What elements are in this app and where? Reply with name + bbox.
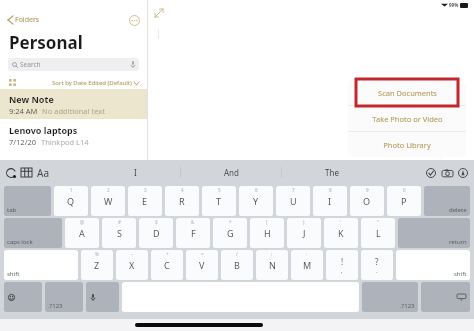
- staticText: 6: [255, 187, 258, 193]
- button[interactable]: delete: [424, 186, 470, 216]
- button[interactable]: shift: [396, 250, 470, 280]
- staticText: tab: [7, 206, 17, 214]
- button[interactable]: $: [139, 218, 173, 248]
- button[interactable]: I: [90, 160, 180, 185]
- button[interactable]: The: [282, 160, 382, 185]
- button[interactable]: Sort by Date Edited (Default): [52, 79, 139, 87]
- button[interactable]: +: [151, 250, 183, 280]
- staticText: Aa: [37, 166, 49, 180]
- staticText: Scan Documents: [378, 88, 437, 98]
- staticText: M: [303, 259, 312, 271]
- staticText: New Note: [9, 93, 54, 105]
- button[interactable]: 5: [202, 186, 236, 216]
- button[interactable]: @: [65, 218, 99, 248]
- staticText: D: [153, 227, 160, 239]
- button[interactable]: ;: [256, 250, 288, 280]
- button[interactable]: Emoji: [4, 282, 42, 312]
- button[interactable]: ": [361, 218, 395, 248]
- staticText: Photo Library: [383, 140, 431, 150]
- button[interactable]: Gallery view: [8, 78, 17, 87]
- staticText: ': [340, 219, 342, 225]
- staticText: ): [303, 219, 305, 225]
- button[interactable]: 0: [387, 186, 421, 216]
- button[interactable]: Hide keyboard: [421, 282, 470, 312]
- staticText: Q: [67, 195, 75, 207]
- button[interactable]: .?123: [45, 282, 83, 312]
- button[interactable]: Insert table: [20, 166, 33, 179]
- staticText: caps lock: [7, 238, 33, 246]
- staticText: S: [117, 227, 122, 239]
- staticText: !: [341, 256, 344, 267]
- button[interactable]: shift: [4, 250, 78, 280]
- button[interactable]: Done: [424, 166, 438, 180]
- staticText: P: [401, 195, 407, 207]
- button[interactable]: #: [102, 218, 136, 248]
- button[interactable]: ': [324, 218, 358, 248]
- button[interactable]: New Note: [0, 89, 147, 119]
- button[interactable]: 6: [239, 186, 273, 216]
- button[interactable]: 9: [350, 186, 384, 216]
- button[interactable]: 3: [128, 186, 162, 216]
- staticText: -: [131, 251, 133, 257]
- button[interactable]: 2: [91, 186, 125, 216]
- button[interactable]: tab: [4, 186, 51, 216]
- button[interactable]: Lenovo laptops: [0, 119, 147, 149]
- staticText: F: [191, 227, 196, 239]
- staticText: Sort by Date Edited (Default): [52, 79, 132, 87]
- button[interactable]: 1: [54, 186, 88, 216]
- staticText: E: [142, 195, 148, 207]
- staticText: 0: [403, 187, 406, 193]
- button[interactable]: *: [213, 218, 247, 248]
- staticText: 9: [366, 187, 369, 193]
- button[interactable]: return: [398, 218, 470, 248]
- button[interactable]: ): [287, 218, 321, 248]
- button[interactable]: caps lock: [4, 218, 62, 248]
- button[interactable]: More options: [128, 14, 141, 27]
- button[interactable]: Aa: [37, 166, 49, 180]
- staticText: Z: [94, 259, 100, 271]
- staticText: .: [376, 267, 378, 275]
- button[interactable]: :: [291, 250, 323, 280]
- staticText: .?123: [400, 302, 415, 310]
- button[interactable]: Dictation: [86, 282, 119, 312]
- staticText: 3: [144, 187, 147, 193]
- button[interactable]: ?: [361, 250, 393, 280]
- button[interactable]: Take Photo or Video: [348, 106, 466, 131]
- staticText: %: [95, 251, 99, 257]
- staticText: 1: [70, 187, 73, 193]
- button[interactable]: And: [181, 160, 281, 185]
- button[interactable]: 4: [165, 186, 199, 216]
- button[interactable]: %: [81, 250, 113, 280]
- button[interactable]: Folders: [6, 13, 42, 27]
- button[interactable]: Camera: [440, 166, 454, 180]
- staticText: Folders: [15, 15, 40, 25]
- button[interactable]: /: [221, 250, 253, 280]
- staticText: ?: [375, 256, 379, 267]
- button[interactable]: Photo Library: [348, 132, 466, 157]
- staticText: #: [118, 219, 121, 225]
- staticText: 4: [181, 187, 184, 193]
- button[interactable]: Search: [8, 58, 139, 71]
- button[interactable]: =: [186, 250, 218, 280]
- staticText: V: [199, 259, 205, 271]
- button[interactable]: -: [116, 250, 148, 280]
- button[interactable]: Undo: [4, 166, 17, 179]
- button[interactable]: Expand: [152, 6, 166, 20]
- button[interactable]: 8: [313, 186, 347, 216]
- staticText: Thinkpod L14: [41, 137, 89, 147]
- staticText: I: [328, 195, 332, 207]
- button[interactable]: Markup: [456, 166, 470, 180]
- button[interactable]: (: [250, 218, 284, 248]
- button[interactable]: Scan Documents: [348, 80, 466, 105]
- staticText: U: [290, 195, 297, 207]
- button[interactable]: .?123: [362, 282, 418, 312]
- staticText: No additional text: [42, 106, 105, 116]
- button[interactable]: !: [326, 250, 358, 280]
- staticText: 7: [292, 187, 295, 193]
- button[interactable]: &: [176, 218, 210, 248]
- button[interactable]: 7: [276, 186, 310, 216]
- staticText: 8: [329, 187, 332, 193]
